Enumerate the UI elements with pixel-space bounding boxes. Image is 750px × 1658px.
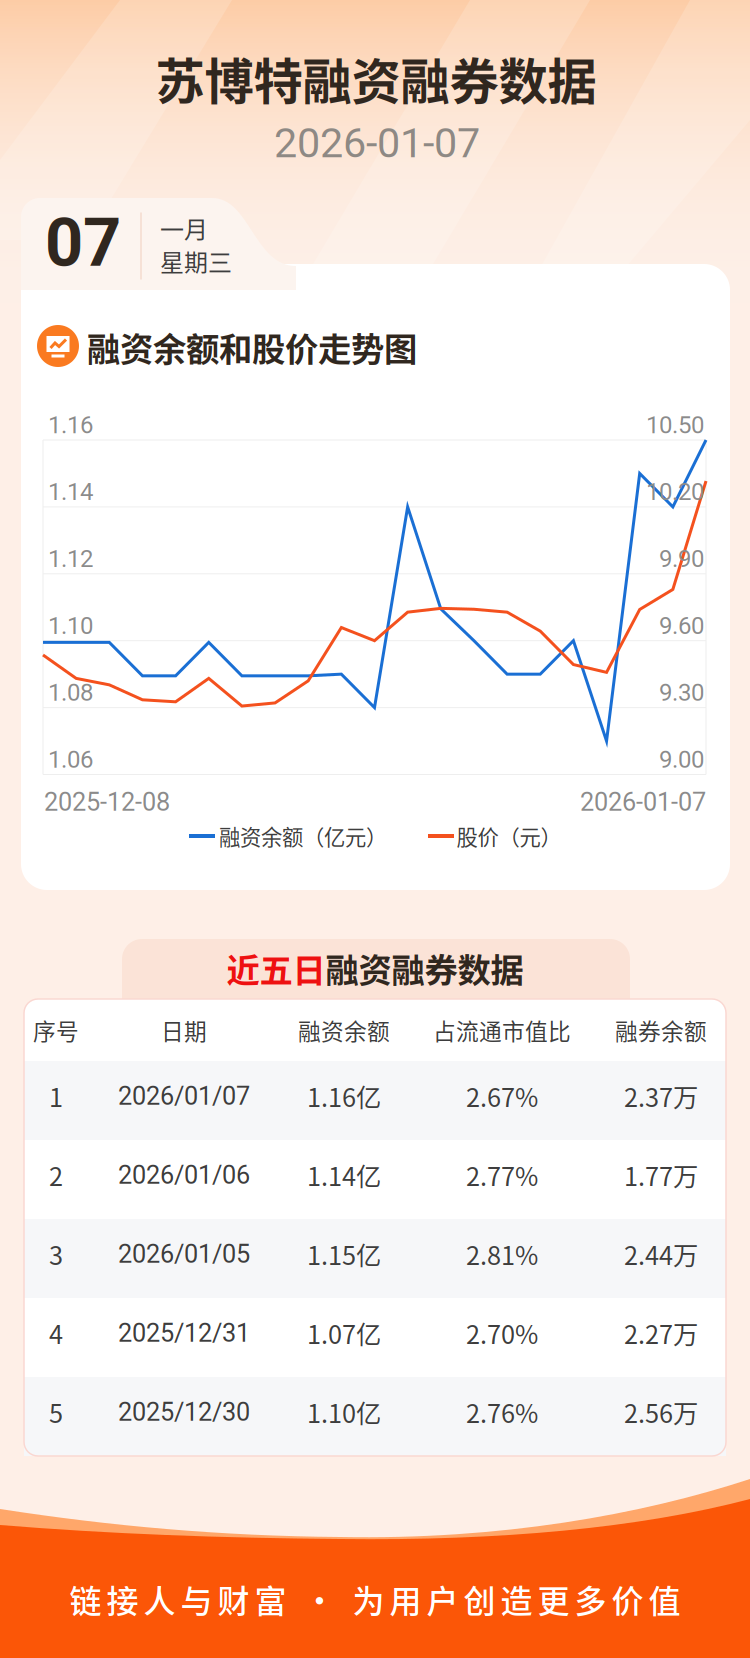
staticText: 9.90 [659,545,704,573]
staticText: 日期 [161,1014,207,1046]
staticText: 1.10 [48,612,93,640]
staticText: 1.14亿 [307,1157,381,1193]
staticText: 1.08 [48,678,93,707]
staticText: 1.06 [48,745,93,773]
staticText: 股价（元） [456,821,561,851]
staticText: 2.81% [466,1236,538,1272]
staticText: 2.56万 [624,1394,698,1430]
staticText: 2025-12-08 [44,787,170,817]
staticText: 2026-01-07 [274,119,480,167]
staticText: 2.37万 [624,1078,698,1114]
staticText: 2026/01/07 [118,1081,250,1111]
staticText: 2026/01/06 [118,1160,250,1190]
staticText: 2026/01/05 [118,1239,250,1269]
staticText: 融资余额（亿元） [219,821,387,851]
staticText: 融资余额和股价走势图 [87,323,417,371]
staticText: 融券余额 [615,1014,707,1046]
staticText: 4 [49,1315,63,1351]
staticText: 2.76% [466,1394,538,1430]
staticText: 1.16亿 [307,1078,381,1114]
staticText: 星期三 [160,244,232,278]
staticText: 2.67% [466,1078,538,1114]
staticText: 一月 [160,211,208,245]
staticText: 3 [49,1236,63,1272]
staticText: 07 [45,204,121,282]
staticText: 2.77% [466,1157,538,1193]
staticText: 2026-01-07 [580,787,706,817]
staticText: 近五日 [226,944,325,992]
staticText: 苏博特融资融券数据 [155,42,596,114]
staticText: 1 [49,1078,63,1114]
staticText: 1.16 [48,411,93,439]
staticText: 序号 [33,1014,79,1046]
staticText: 2025/12/31 [118,1318,250,1348]
staticText: 1.07亿 [307,1315,381,1351]
staticText: 1.10亿 [307,1394,381,1430]
staticText: 1.14 [48,478,93,506]
staticText: 10.50 [646,411,704,439]
staticText: 5 [49,1394,63,1430]
staticText: 融资融券数据 [325,944,523,992]
staticText: 9.00 [659,745,704,773]
staticText: 1.77万 [624,1157,698,1193]
staticText: 链接人与财富 · 为用户创造更多价值 [69,1576,680,1622]
staticText: 9.30 [659,678,704,707]
staticText: 融资余额 [298,1014,390,1046]
staticText: 2025/12/30 [118,1397,250,1427]
staticText: 9.60 [659,612,704,640]
staticText: 1.12 [48,545,93,573]
staticText: 2.44万 [624,1236,698,1272]
staticText: 2.27万 [624,1315,698,1351]
staticText: 2 [49,1157,63,1193]
staticText: 占流通市值比 [433,1014,571,1046]
staticText: 1.15亿 [307,1236,381,1272]
staticText: 2.70% [466,1315,538,1351]
staticText: 10.20 [646,478,704,506]
